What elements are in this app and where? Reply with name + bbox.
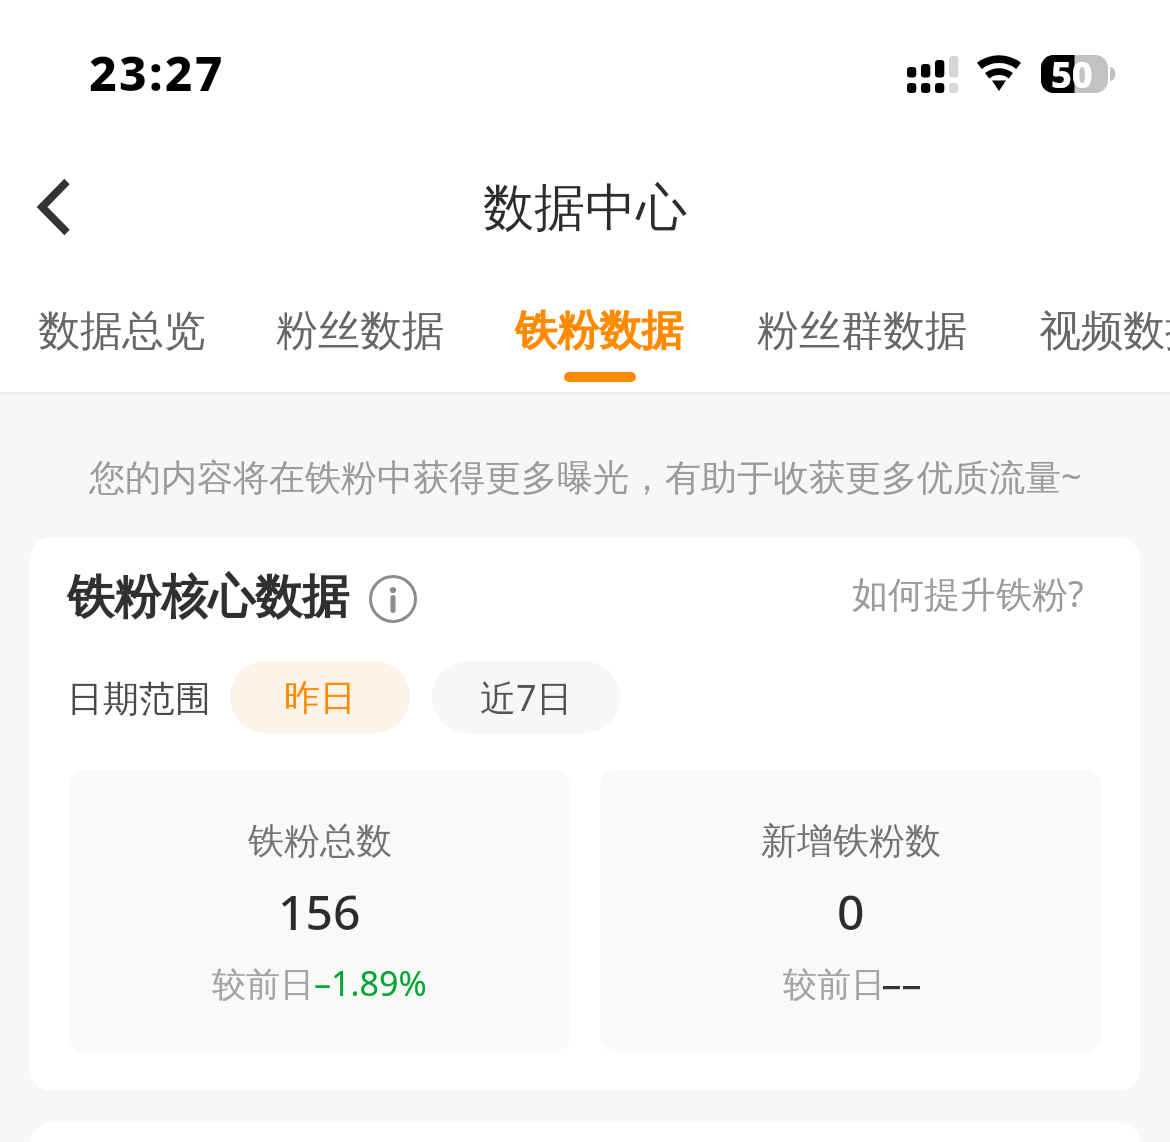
staticText: 较前日 <box>783 960 919 1006</box>
button[interactable]: Info <box>367 573 419 625</box>
staticText: 粉丝数据 <box>276 305 444 358</box>
button[interactable]: 粉丝数据 <box>240 282 480 392</box>
staticText: 156 <box>278 879 361 944</box>
staticText: 近7日 <box>480 673 573 722</box>
staticText: 新增铁粉数 <box>761 818 941 863</box>
button[interactable]: 数据总览 <box>0 282 240 392</box>
staticText: 23:27 <box>89 40 225 105</box>
staticText: 0 <box>837 879 865 944</box>
staticText: 数据中心 <box>483 176 687 240</box>
staticText: 数据总览 <box>38 305 206 358</box>
button[interactable]: 铁粉总数 <box>69 770 570 1052</box>
button[interactable]: 昨日 <box>230 661 410 733</box>
staticText: 50 <box>1051 50 1093 99</box>
staticText: 视频数据 <box>1039 305 1170 358</box>
staticText: 较前日–1.89% <box>212 960 427 1006</box>
staticText: 粉丝群数据 <box>757 305 967 358</box>
button[interactable]: 近7日 <box>432 661 620 733</box>
staticText: 铁粉数据 <box>515 305 683 358</box>
staticText: 您的内容将在铁粉中获得更多曝光，有助于收获更多优质流量~ <box>89 452 1082 501</box>
button[interactable]: 粉丝群数据 <box>720 282 1003 392</box>
button[interactable]: 如何提升铁粉? <box>842 558 1102 628</box>
button[interactable]: Back <box>12 162 102 252</box>
staticText: 如何提升铁粉? <box>852 569 1084 618</box>
staticText: 日期范围 <box>67 676 211 721</box>
button[interactable]: 视频数据 <box>1003 282 1170 392</box>
staticText: 铁粉核心数据 <box>67 568 349 627</box>
button[interactable]: 新增铁粉数 <box>600 770 1101 1052</box>
staticText: 昨日 <box>284 675 356 720</box>
button[interactable]: 铁粉数据 <box>480 282 720 392</box>
staticText: 铁粉总数 <box>248 818 392 863</box>
